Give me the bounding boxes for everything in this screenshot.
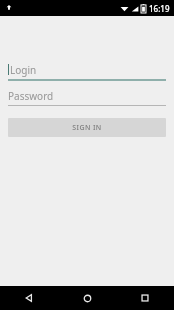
button[interactable]: Password [8, 88, 166, 106]
staticText: Password [8, 89, 54, 103]
button[interactable]: Home [58, 286, 116, 310]
staticText: 16:19 [149, 3, 170, 14]
staticText: Login [10, 63, 37, 77]
staticText: SIGN IN [72, 123, 102, 133]
button[interactable]: Recent apps [116, 286, 174, 310]
button[interactable]: SIGN IN [8, 118, 166, 137]
button[interactable]: Back [0, 286, 58, 310]
button[interactable]: Login [8, 62, 166, 81]
